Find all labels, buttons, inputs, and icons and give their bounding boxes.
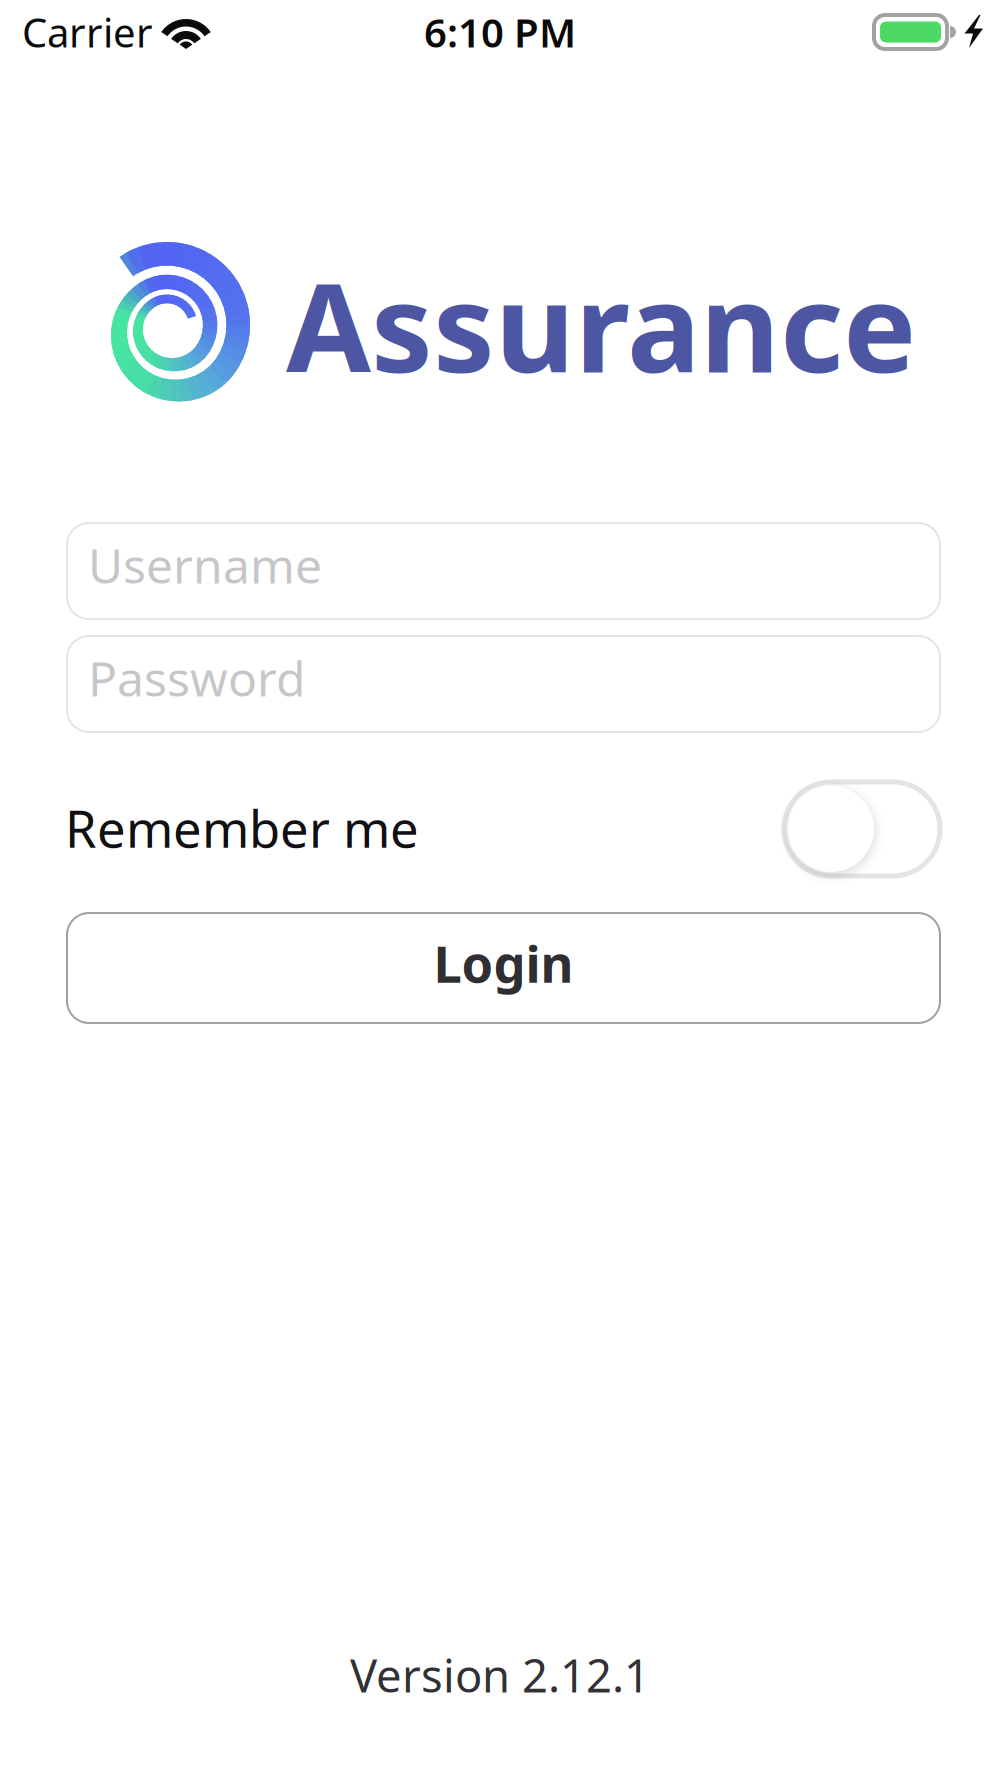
button[interactable]: Remember me [67,782,940,876]
staticText: Password [88,646,306,710]
staticText: Login [433,929,573,997]
button[interactable]: Login [67,913,940,1023]
staticText: Version 2.12.1 [350,1645,650,1705]
staticText: Assurance [286,244,916,406]
staticText: Carrier [22,5,153,58]
staticText: 6:10 PM [424,5,576,58]
staticText: Username [88,533,322,597]
staticText: Remember me [65,794,419,862]
